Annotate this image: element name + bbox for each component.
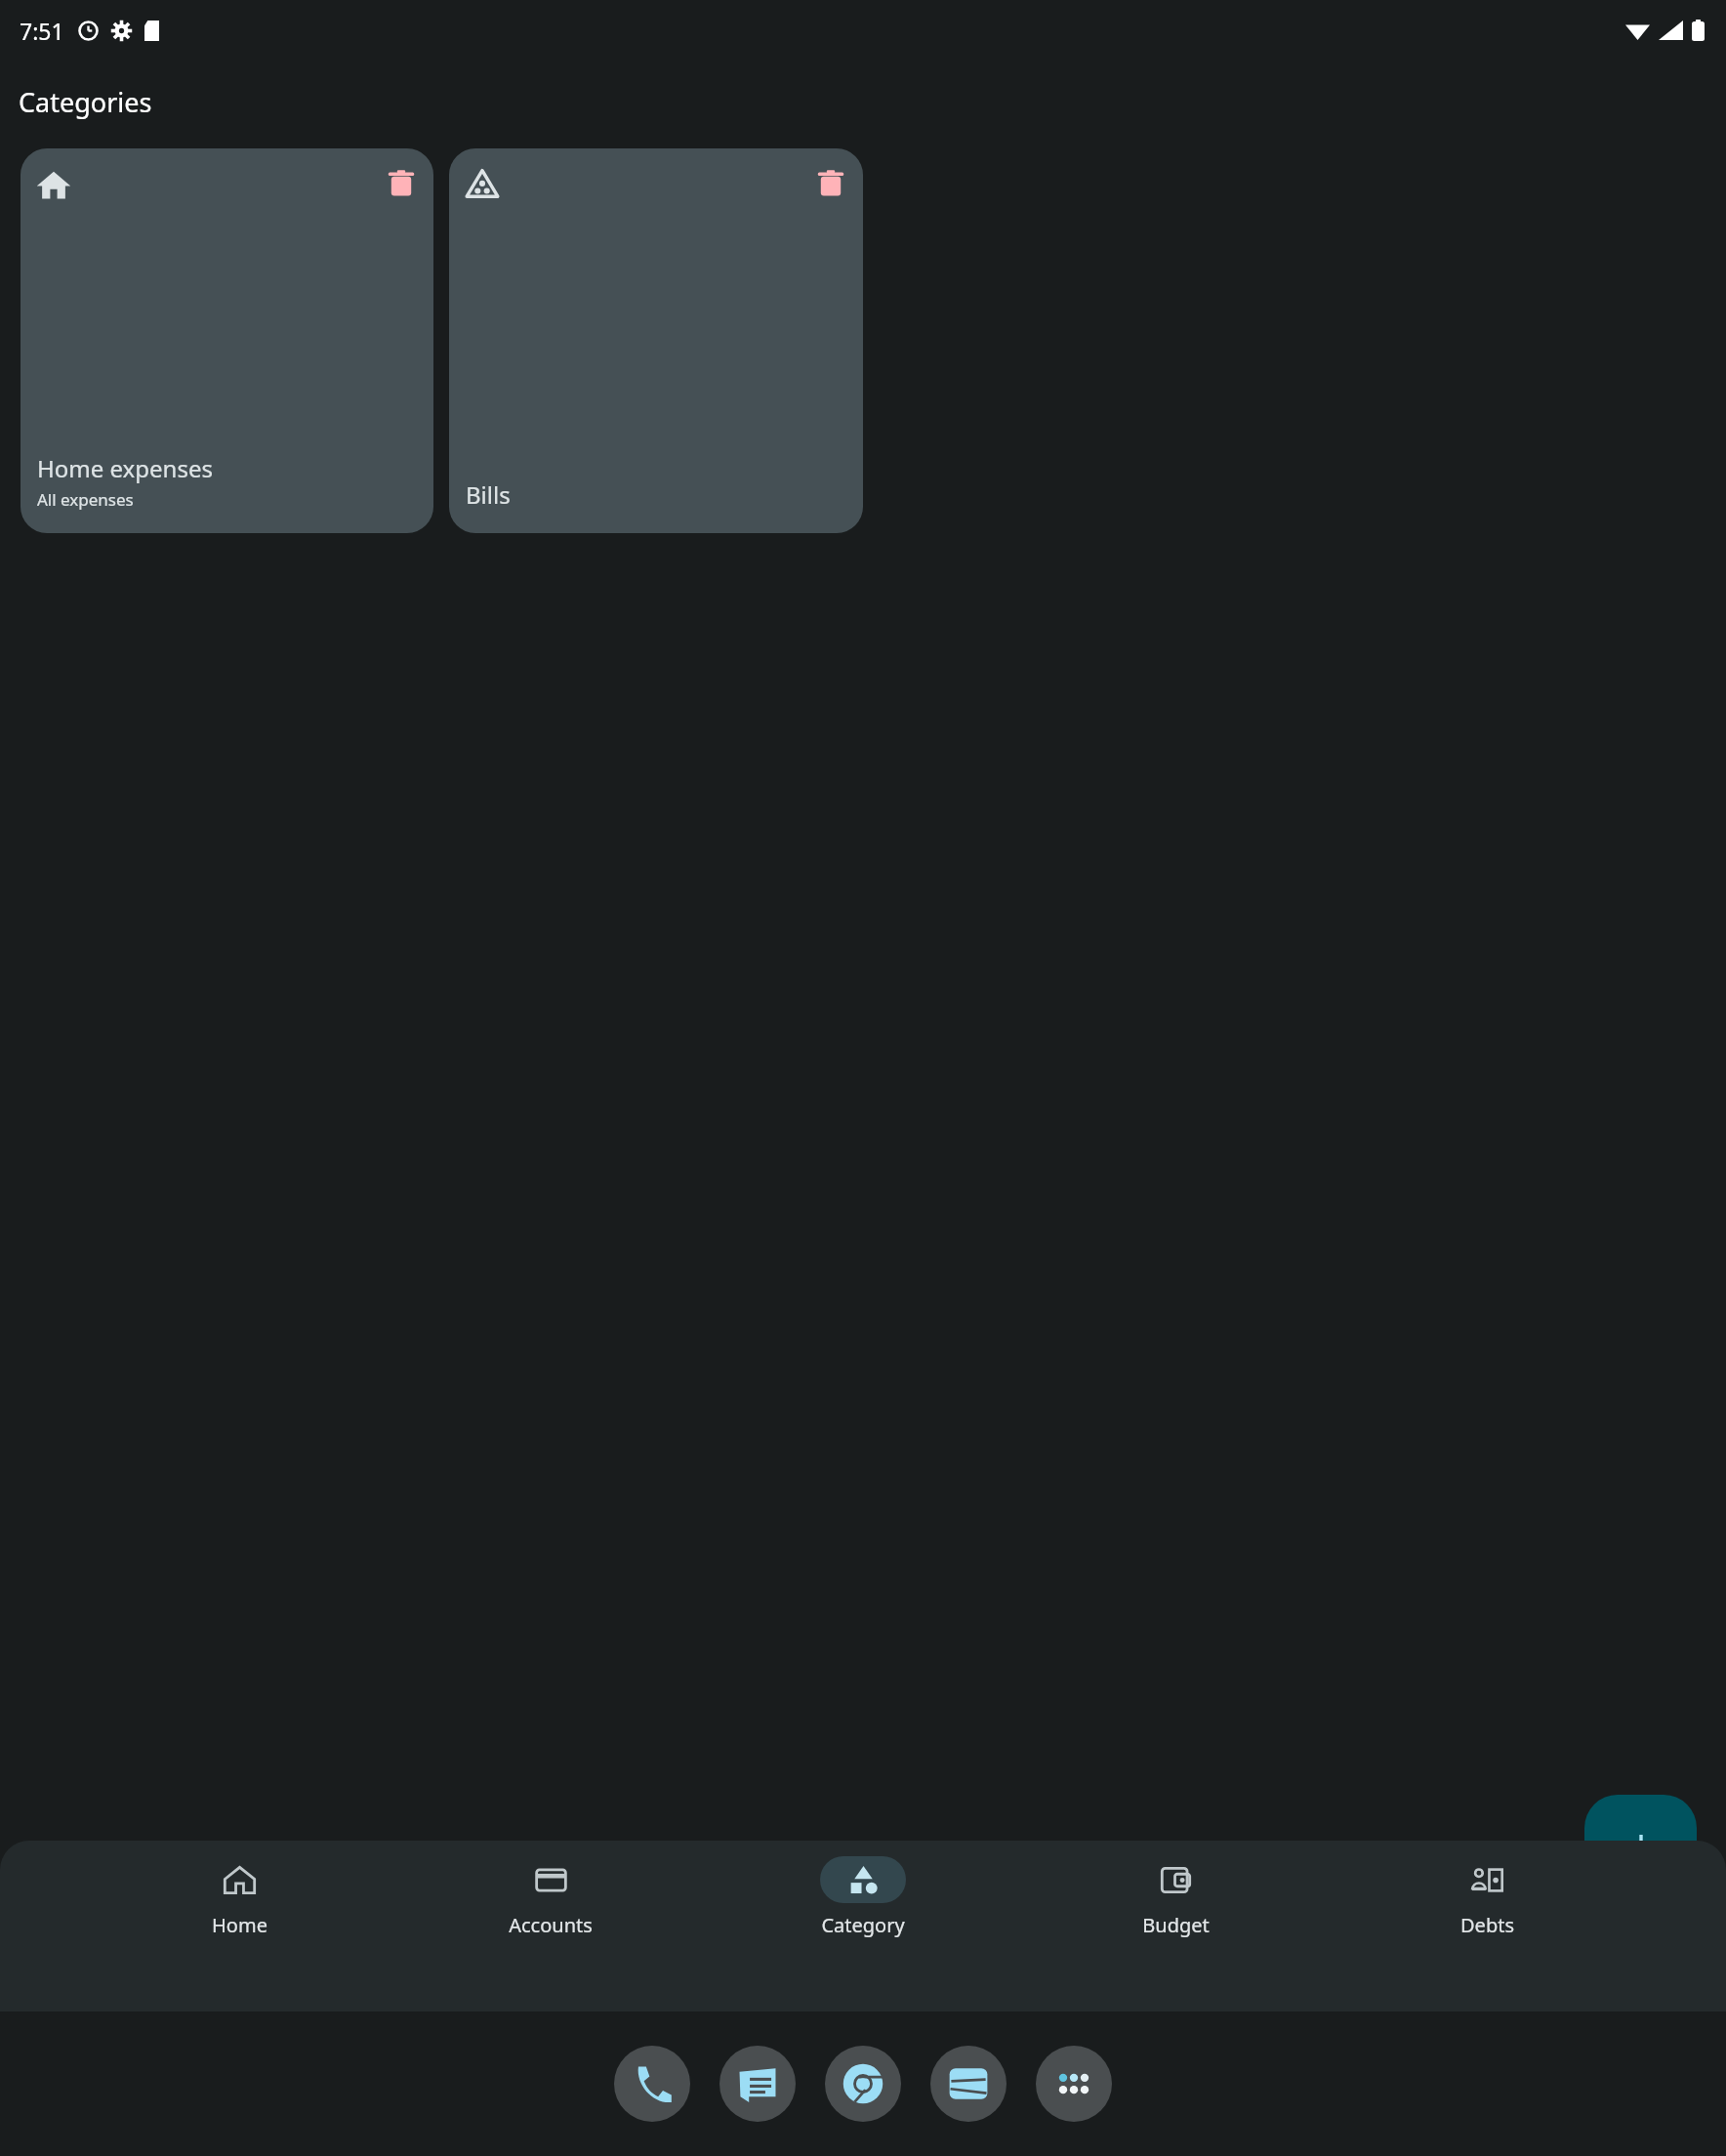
button[interactable]: Budget (1102, 1856, 1249, 1938)
button[interactable]: Delete Home expenses (385, 167, 418, 200)
button[interactable]: Delete Home expenses (21, 148, 433, 533)
staticText: Bills (466, 478, 511, 511)
button[interactable]: Add category (1584, 1795, 1697, 1907)
staticText: Categories (19, 84, 152, 120)
staticText: All expenses (37, 488, 134, 511)
button[interactable]: Debts (1414, 1856, 1560, 1938)
button[interactable]: Home (166, 1856, 312, 1938)
button[interactable]: Wallet (930, 2046, 1007, 2122)
button[interactable]: Delete Bills (814, 167, 847, 200)
staticText: Budget (1142, 1912, 1210, 1938)
button[interactable]: Category (790, 1856, 936, 1938)
staticText: 7:51 (20, 16, 64, 46)
button[interactable]: Delete Bills (449, 148, 863, 533)
button[interactable]: Phone (614, 2046, 690, 2122)
staticText: Home expenses (37, 452, 213, 484)
button[interactable]: Messages (719, 2046, 796, 2122)
button[interactable]: Accounts (477, 1856, 624, 1938)
staticText: Category (821, 1912, 905, 1938)
staticText: Accounts (509, 1912, 593, 1938)
staticText: Home (212, 1912, 267, 1938)
button[interactable]: Chrome (825, 2046, 901, 2122)
staticText: Debts (1460, 1912, 1514, 1938)
button[interactable]: All apps (1036, 2046, 1112, 2122)
